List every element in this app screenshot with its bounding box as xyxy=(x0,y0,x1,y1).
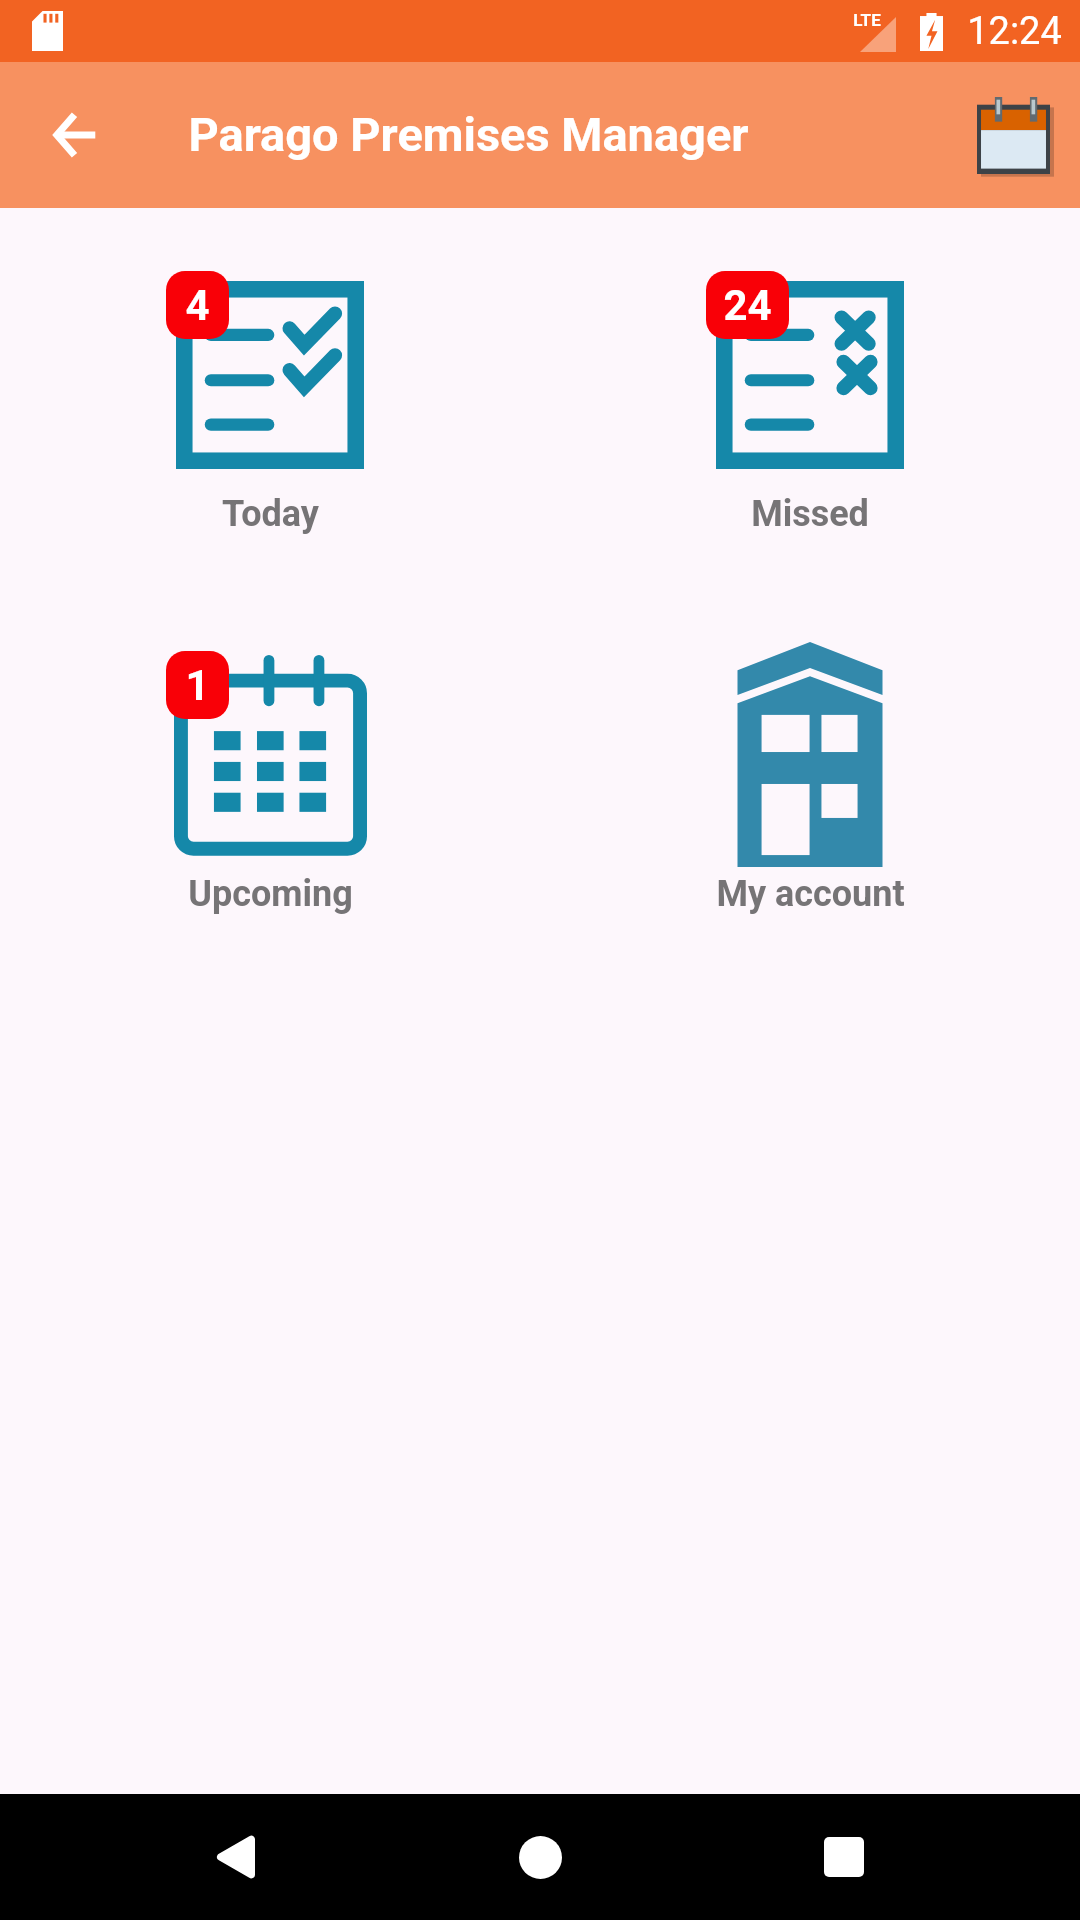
staticText: 4 xyxy=(185,281,210,330)
button[interactable]: 1 xyxy=(0,661,540,915)
staticText: 24 xyxy=(723,281,772,330)
button[interactable]: Recents xyxy=(794,1807,894,1907)
button[interactable]: 4 xyxy=(0,281,540,535)
button[interactable]: Home xyxy=(490,1807,590,1907)
staticText: Today xyxy=(222,493,319,535)
button[interactable]: 24 xyxy=(540,281,1080,535)
staticText: 12:24 xyxy=(967,9,1062,54)
button[interactable]: My account xyxy=(540,661,1080,915)
button[interactable]: Back xyxy=(186,1807,286,1907)
staticText: Parago Premises Manager xyxy=(188,107,749,162)
button[interactable]: Back xyxy=(30,91,118,179)
staticText: 1 xyxy=(185,661,210,710)
staticText: My account xyxy=(716,873,905,915)
staticText: LTE xyxy=(853,10,881,30)
staticText: Upcoming xyxy=(188,873,353,915)
button[interactable]: Calendar xyxy=(964,87,1060,183)
staticText: Missed xyxy=(751,493,869,535)
